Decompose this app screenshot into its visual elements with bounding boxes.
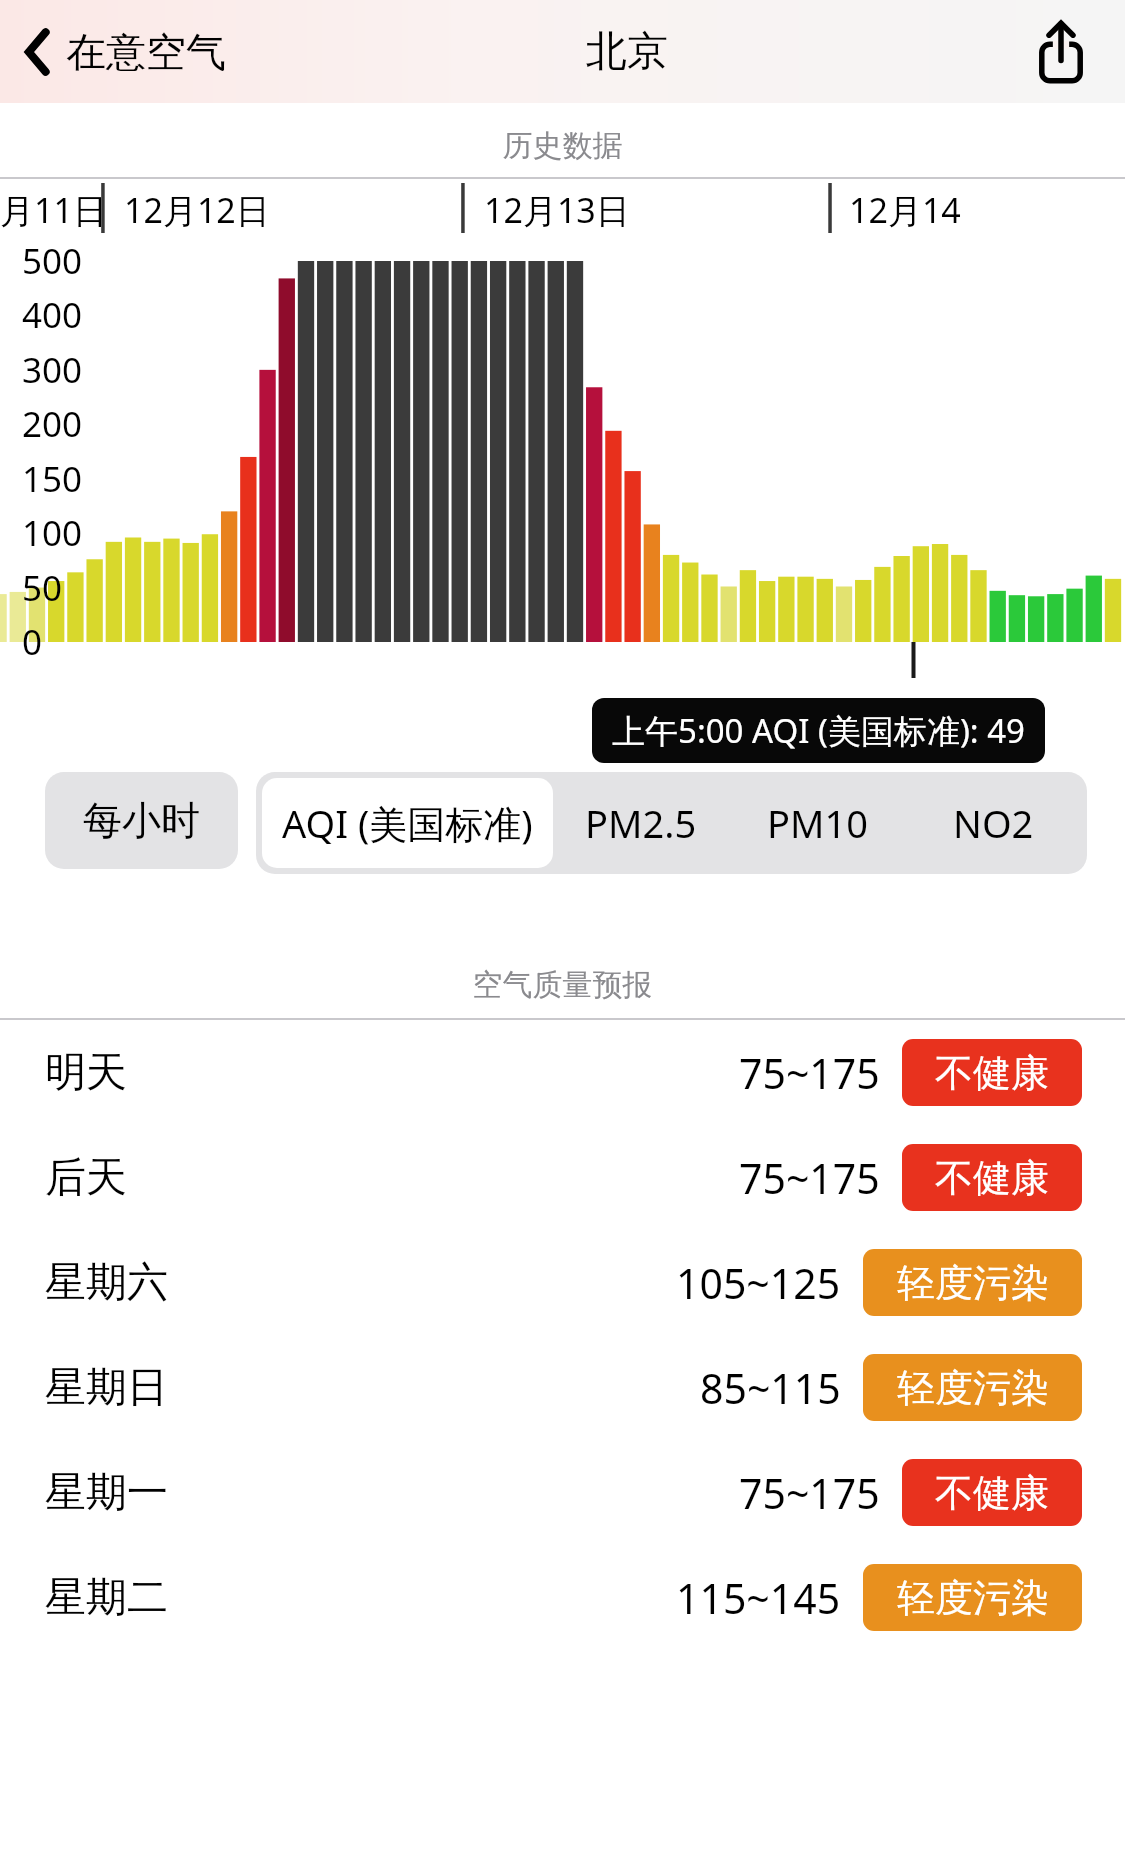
staticText: 轻度污染 [897,1574,1049,1622]
staticText: 每小时 [83,796,200,845]
staticText: 12月14 [849,187,961,233]
button[interactable]: 每小时 [45,772,238,869]
button[interactable]: 星期六 [0,1230,1125,1335]
button[interactable]: 明天 [0,1020,1125,1125]
staticText: 75~175 [739,1465,880,1521]
staticText: 后天 [45,1152,127,1204]
staticText: NO2 [953,797,1034,849]
button[interactable]: AQI (美国标准) [262,778,553,868]
staticText: 105~125 [676,1255,841,1311]
staticText: 北京 [586,26,668,78]
staticText: 115~145 [676,1570,841,1626]
staticText: 50 [22,564,63,612]
staticText: 12月12日 [124,187,270,233]
staticText: 星期六 [45,1257,168,1309]
button[interactable]: 星期一 [0,1440,1125,1545]
staticText: 0 [22,618,43,666]
staticText: 上午5:00 AQI (美国标准): 49 [612,708,1025,753]
staticText: 轻度污染 [897,1259,1049,1307]
button[interactable]: 星期日 [0,1335,1125,1440]
staticText: AQI (美国标准) [282,797,533,849]
button[interactable]: PM2.5 [553,778,729,868]
staticText: 月11日 [0,187,107,233]
staticText: 75~175 [739,1045,880,1101]
staticText: 星期日 [45,1362,168,1414]
staticText: 400 [22,291,83,339]
staticText: 在意空气 [66,27,226,77]
staticText: 500 [22,237,83,285]
button[interactable]: Share [1023,14,1099,90]
staticText: 150 [22,455,83,503]
staticText: 空气质量预报 [0,966,1125,1004]
button[interactable]: PM10 [729,778,905,868]
staticText: PM2.5 [585,797,697,849]
staticText: 星期一 [45,1467,168,1519]
staticText: 85~115 [700,1360,841,1416]
staticText: PM10 [767,797,868,849]
staticText: 历史数据 [0,127,1125,165]
button[interactable]: 后天 [0,1125,1125,1230]
staticText: 100 [22,509,83,557]
staticText: 不健康 [935,1154,1049,1202]
staticText: 明天 [45,1047,127,1099]
button[interactable]: NO2 [905,778,1081,868]
staticText: 12月13日 [484,187,630,233]
staticText: 300 [22,346,83,394]
staticText: 75~175 [739,1150,880,1206]
staticText: 不健康 [935,1469,1049,1517]
staticText: 200 [22,400,83,448]
staticText: 轻度污染 [897,1364,1049,1412]
button[interactable]: 星期二 [0,1545,1125,1650]
staticText: 星期二 [45,1572,168,1624]
staticText: 不健康 [935,1049,1049,1097]
button[interactable]: 在意空气 [20,17,232,87]
